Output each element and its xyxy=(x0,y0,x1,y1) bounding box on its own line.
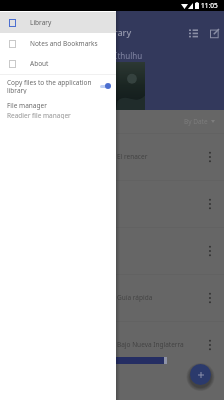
staticText: By Date xyxy=(184,117,208,126)
button[interactable]: Library xyxy=(0,12,116,33)
button[interactable]: More options xyxy=(202,243,218,259)
staticText: About xyxy=(30,59,49,68)
button[interactable]: More options xyxy=(202,149,218,165)
button[interactable]: Add book xyxy=(190,364,211,385)
button[interactable]: More options xyxy=(202,337,218,353)
button[interactable]: File manager xyxy=(0,101,116,119)
button[interactable]: By Date xyxy=(184,117,215,126)
button[interactable]: Guía rápida xyxy=(0,274,224,321)
staticText: La llamada de Cthulhu xyxy=(58,50,143,61)
button[interactable]: El renacer xyxy=(0,133,224,180)
staticText: Guía rápida xyxy=(117,293,153,302)
staticText: Readier file manager xyxy=(7,111,71,119)
button[interactable]: More options xyxy=(202,196,218,212)
staticText: Library xyxy=(30,18,52,27)
button[interactable]: Sort list xyxy=(183,23,203,43)
staticText: 11:05 xyxy=(201,1,218,10)
button[interactable]: Notes and Bookmarks xyxy=(0,33,116,54)
staticText: El renacer xyxy=(117,152,148,161)
staticText: Bajo Nueva Inglaterra xyxy=(117,340,184,349)
staticText: File manager xyxy=(7,101,47,110)
button[interactable]: More options xyxy=(202,290,218,306)
button[interactable]: More options xyxy=(0,227,224,274)
button[interactable]: About xyxy=(0,53,116,74)
staticText: Notes and Bookmarks xyxy=(30,39,98,48)
button[interactable]: Copy files to the application library xyxy=(0,78,116,94)
button[interactable]: Edit xyxy=(204,23,224,43)
staticText: Library xyxy=(101,26,132,38)
button[interactable]: More options xyxy=(0,180,224,227)
staticText: Copy files to the application library xyxy=(7,78,98,94)
button[interactable]: Bajo Nueva Inglaterra xyxy=(0,321,224,368)
